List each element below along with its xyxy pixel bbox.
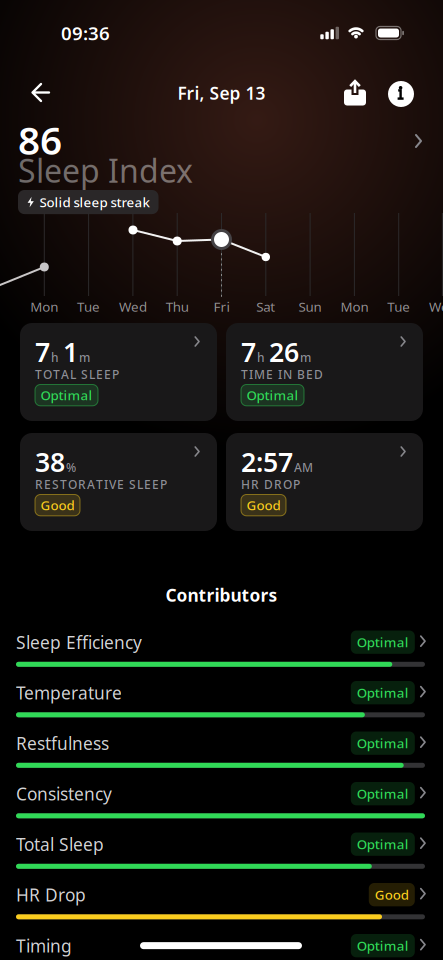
staticText: Good: [246, 496, 280, 514]
staticText: Mon: [340, 298, 368, 315]
button[interactable]: HR Drop: [16, 883, 427, 919]
staticText: 26: [269, 334, 299, 369]
staticText: 7: [35, 334, 50, 369]
staticText: Mon: [30, 298, 58, 315]
staticText: Contributors: [165, 583, 277, 606]
staticText: Temperature: [16, 681, 122, 704]
staticText: Optimal: [357, 835, 409, 853]
staticText: Sleep Index: [18, 149, 193, 191]
staticText: Sleep Efficiency: [16, 631, 142, 654]
staticText: Optimal: [357, 633, 409, 651]
staticText: %: [66, 459, 76, 475]
button[interactable]: 86: [0, 120, 443, 192]
staticText: Optimal: [357, 937, 409, 954]
staticText: Optimal: [246, 386, 298, 404]
staticText: Total Sleep: [16, 833, 104, 856]
staticText: R E S T O R A T I V E S L E E P: [35, 476, 167, 492]
staticText: 7: [241, 334, 256, 369]
staticText: 2:57: [241, 444, 293, 479]
staticText: Consistency: [16, 782, 112, 805]
button[interactable]: 38: [20, 433, 217, 531]
staticText: h: [257, 349, 268, 365]
staticText: Solid sleep streak: [39, 193, 149, 211]
staticText: AM: [294, 459, 313, 475]
staticText: Fri, Sep 13: [177, 81, 265, 104]
button[interactable]: Sleep Efficiency: [16, 630, 427, 667]
button[interactable]: Back: [21, 73, 61, 113]
staticText: HR Drop: [16, 883, 86, 906]
staticText: Sun: [299, 298, 322, 315]
staticText: m: [300, 349, 311, 365]
staticText: 09:36: [61, 21, 110, 45]
staticText: H R D R O P: [241, 476, 300, 492]
staticText: Wed: [429, 298, 443, 315]
staticText: Timing: [16, 934, 72, 957]
staticText: Optimal: [40, 386, 92, 404]
staticText: m: [79, 349, 90, 365]
staticText: Optimal: [357, 785, 409, 802]
button[interactable]: 2:57: [226, 433, 423, 531]
staticText: Wed: [119, 298, 147, 315]
staticText: Good: [375, 886, 409, 903]
button[interactable]: Share: [336, 73, 374, 113]
button[interactable]: 7: [20, 323, 217, 421]
staticText: 1: [63, 334, 78, 369]
staticText: T I M E I N B E D: [241, 366, 323, 382]
staticText: h: [51, 349, 62, 365]
button[interactable]: Consistency: [16, 782, 427, 818]
staticText: Tue: [387, 298, 410, 315]
staticText: 86: [18, 114, 62, 165]
staticText: Optimal: [357, 734, 409, 752]
button[interactable]: Timing: [16, 934, 427, 957]
button[interactable]: Total Sleep: [16, 832, 427, 869]
button[interactable]: Restfulness: [16, 731, 427, 768]
staticText: T O T A L S L E E P: [35, 366, 119, 382]
staticText: Optimal: [357, 684, 409, 701]
staticText: Fri: [213, 298, 229, 315]
staticText: Good: [40, 496, 74, 514]
button[interactable]: 7: [226, 323, 423, 421]
button[interactable]: Info: [382, 74, 420, 114]
staticText: Sat: [256, 298, 275, 315]
staticText: 38: [35, 444, 65, 479]
staticText: Tue: [77, 298, 100, 315]
button[interactable]: Temperature: [16, 681, 427, 717]
staticText: Restfulness: [16, 732, 109, 755]
staticText: Thu: [166, 298, 189, 315]
